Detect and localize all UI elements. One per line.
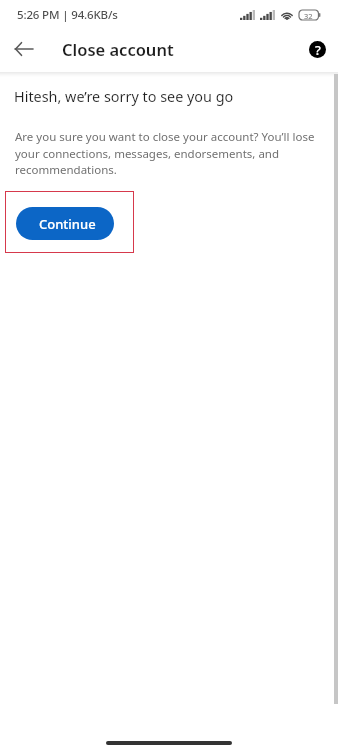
staticText: 32 (304, 11, 313, 21)
staticText: Are you sure you want to close your acco… (15, 129, 320, 177)
staticText: Close account (62, 38, 174, 60)
staticText: 5:26 PM | 94.6KB/s (17, 7, 118, 23)
button[interactable]: Continue (16, 207, 114, 240)
staticText: ? (315, 41, 321, 58)
button[interactable]: Help (303, 35, 331, 63)
staticText: Continue (39, 215, 96, 233)
staticText: Hitesh, we’re sorry to see you go (14, 87, 234, 107)
button[interactable]: Back (9, 34, 39, 64)
